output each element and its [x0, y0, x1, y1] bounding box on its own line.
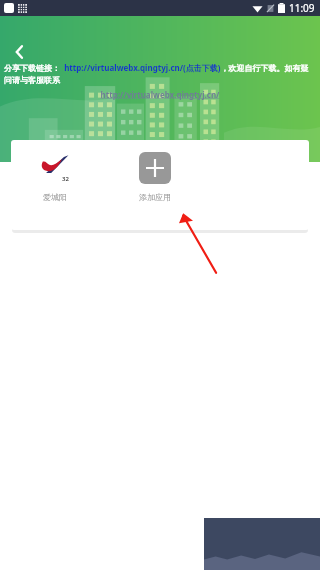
staticText: 11:09: [289, 1, 315, 15]
staticText: 爱城阳: [43, 192, 67, 202]
staticText: 添加应用: [139, 192, 171, 202]
staticText: 32: [62, 175, 69, 183]
staticText: 分享下载链接： http://virtualwebx.qingtyj.cn/(点…: [4, 62, 316, 85]
button[interactable]: http://virtualwebx.qingtyj.cn/: [0, 89, 320, 100]
button[interactable]: 32: [25, 152, 85, 202]
button[interactable]: 添加应用: [125, 152, 185, 202]
button[interactable]: Back: [4, 36, 36, 68]
